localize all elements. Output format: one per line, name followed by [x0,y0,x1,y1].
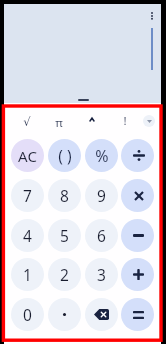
button[interactable]: More options [147,12,157,20]
button[interactable]: 4 [11,219,44,252]
button[interactable]: Expand keypad [143,115,155,127]
button[interactable]: 1 [11,258,44,291]
button[interactable]: Pi [46,110,72,136]
staticText: 1 [23,264,32,285]
button[interactable]: Factorial [112,108,138,134]
staticText: 8 [60,185,69,206]
staticText: 7 [23,185,32,206]
button[interactable]: Power [79,106,105,132]
staticText: 9 [97,185,106,206]
button[interactable]: Decimal point [48,298,81,331]
staticText: 2 [60,264,69,285]
button[interactable]: 9 [85,179,118,212]
button[interactable]: % [85,139,118,172]
button[interactable]: Plus [121,258,154,291]
button[interactable]: AC [11,139,44,172]
button[interactable]: 6 [85,219,118,252]
staticText: 4 [23,225,32,246]
staticText: 0 [23,304,32,325]
button[interactable]: Multiply [121,179,154,212]
button[interactable]: Equals [121,298,154,331]
staticText: √ [23,115,31,128]
button[interactable]: Backspace [85,298,118,331]
button[interactable]: ( ) [48,139,81,172]
button[interactable]: 8 [48,179,81,212]
staticText: ( ) [58,145,72,166]
staticText: % [95,145,109,167]
button[interactable]: 3 [85,258,118,291]
button[interactable]: 0 [11,298,44,331]
button[interactable]: Square root [14,108,40,134]
staticText: ! [123,113,127,129]
button[interactable]: 2 [48,258,81,291]
button[interactable]: 5 [48,219,81,252]
button[interactable]: 7 [11,179,44,212]
button[interactable]: Minus [121,219,154,252]
staticText: π [55,115,63,131]
staticText: 6 [97,225,106,246]
button[interactable]: Divide [121,139,154,172]
staticText: 5 [60,225,69,246]
staticText: 3 [97,264,106,285]
staticText: AC [18,146,37,166]
